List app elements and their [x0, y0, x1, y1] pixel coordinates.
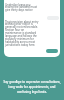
button[interactable]: Send message [46, 49, 58, 53]
staticText: Say goodbye to expensive consultations, … [3, 80, 61, 94]
staticText: That provision about entry without prior… [5, 20, 39, 47]
staticText: Under the lease you shared the landlord … [5, 3, 39, 12]
